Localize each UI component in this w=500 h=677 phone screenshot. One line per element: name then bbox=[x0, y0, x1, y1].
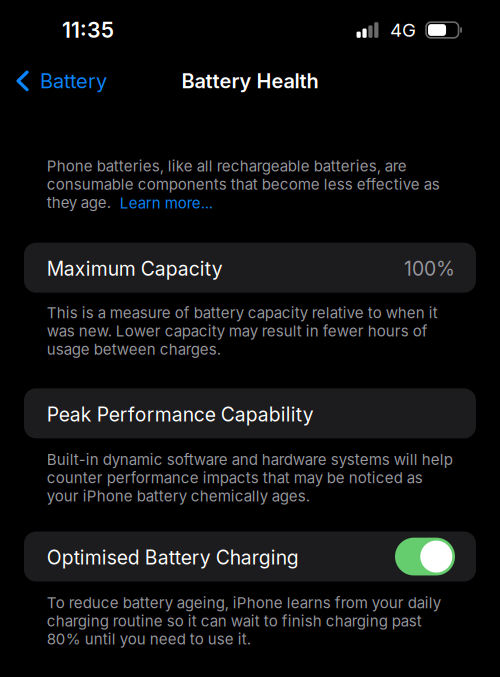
staticText: Built-in dynamic software and hardware s… bbox=[47, 450, 453, 505]
staticText: Battery bbox=[40, 69, 107, 93]
button[interactable]: Learn more... bbox=[120, 194, 213, 212]
staticText: To reduce battery ageing, iPhone learns … bbox=[47, 594, 441, 648]
button[interactable]: Peak Performance Capability bbox=[24, 388, 476, 438]
staticText: This is a measure of battery capacity re… bbox=[47, 304, 438, 358]
button[interactable]: Maximum Capacity bbox=[24, 243, 476, 293]
staticText: Phone batteries, like all rechargeable b… bbox=[47, 157, 440, 212]
button[interactable]: Optimised Battery Charging bbox=[24, 532, 476, 582]
staticText: Battery Health bbox=[181, 69, 318, 93]
staticText: Peak Performance Capability bbox=[47, 403, 314, 426]
button[interactable]: Battery bbox=[0, 62, 117, 100]
staticText: 4G bbox=[390, 19, 416, 41]
staticText: Optimised Battery Charging bbox=[47, 546, 299, 569]
staticText: 11:35 bbox=[62, 17, 114, 43]
staticText: Learn more... bbox=[120, 194, 213, 212]
staticText: 100% bbox=[404, 257, 455, 280]
staticText: Maximum Capacity bbox=[47, 257, 223, 280]
